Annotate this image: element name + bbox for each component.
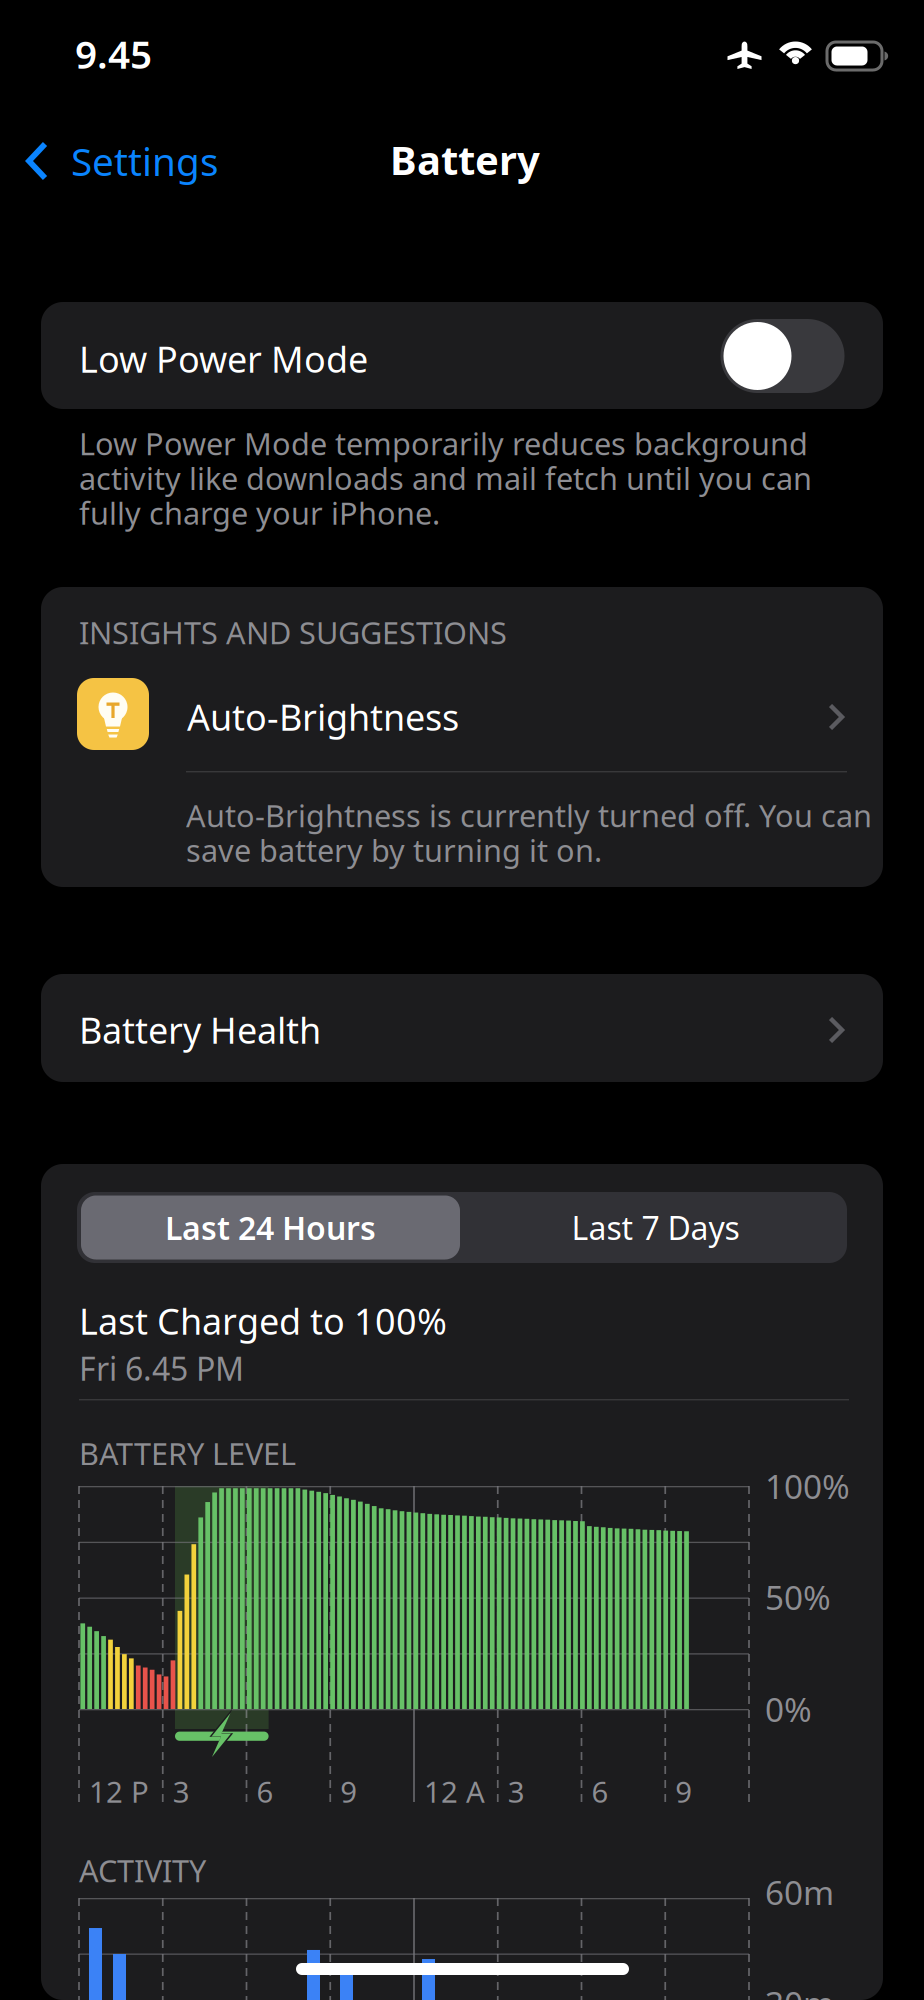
staticText: 12 A: [424, 1772, 485, 1811]
staticText: Settings: [71, 135, 219, 187]
staticText: 50%: [765, 1575, 831, 1619]
button[interactable]: Last 24 Hours: [81, 1195, 460, 1259]
staticText: Battery: [390, 133, 540, 186]
staticText: 3: [173, 1772, 190, 1811]
staticText: Auto-Brightness: [187, 693, 459, 741]
staticText: 12 P: [89, 1772, 149, 1811]
staticText: INSIGHTS AND SUGGESTIONS: [79, 612, 507, 653]
staticText: Fri 6.45 PM: [79, 1347, 244, 1389]
staticText: 0%: [765, 1687, 812, 1731]
staticText: 3: [508, 1772, 525, 1811]
button[interactable]: Last 7 Days: [464, 1195, 847, 1259]
staticText: 60m: [765, 1870, 834, 1914]
staticText: 30m: [765, 1981, 834, 2000]
button[interactable]: Settings: [0, 124, 241, 198]
staticText: ACTIVITY: [79, 1850, 206, 1891]
staticText: 100%: [765, 1464, 850, 1508]
staticText: Last Charged to 100%: [79, 1297, 447, 1345]
staticText: Battery Health: [79, 1006, 321, 1054]
staticText: 9.45: [75, 28, 152, 79]
staticText: 9: [675, 1772, 692, 1811]
staticText: 9: [340, 1772, 357, 1811]
button[interactable]: Battery Health: [41, 974, 883, 1082]
staticText: Low Power Mode: [79, 335, 368, 383]
button[interactable]: Low Power Mode: [41, 302, 883, 409]
staticText: Last 7 Days: [571, 1206, 739, 1249]
staticText: Auto-Brightness is currently turned off.…: [186, 795, 872, 870]
staticText: Low Power Mode temporarily reduces backg…: [79, 423, 812, 533]
staticText: BATTERY LEVEL: [79, 1433, 296, 1474]
staticText: Last 24 Hours: [165, 1206, 376, 1249]
staticText: 6: [256, 1772, 273, 1811]
staticText: 6: [591, 1772, 608, 1811]
button[interactable]: Auto-Brightness: [41, 657, 883, 767]
